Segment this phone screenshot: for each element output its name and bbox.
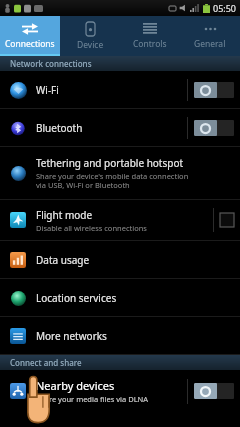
staticText: Device bbox=[77, 39, 104, 51]
staticText: Nearby devices bbox=[36, 378, 115, 393]
staticText: Connections bbox=[5, 38, 55, 50]
button[interactable]: Device bbox=[60, 16, 120, 56]
button[interactable]: Controls bbox=[120, 16, 180, 56]
staticText: General bbox=[194, 38, 226, 50]
staticText: Data usage bbox=[36, 253, 90, 267]
button[interactable]: Bluetooth bbox=[0, 109, 240, 146]
button[interactable]: Toggle switch bbox=[194, 82, 234, 98]
staticText: Tethering and portable hotspot bbox=[36, 156, 184, 170]
button[interactable]: Location services bbox=[0, 279, 240, 316]
button[interactable]: Toggle switch bbox=[194, 383, 234, 399]
button[interactable]: Toggle switch bbox=[194, 120, 234, 136]
staticText: Disable all wireless connections bbox=[36, 223, 147, 233]
staticText: 05:50 bbox=[213, 2, 237, 14]
staticText: Flight mode bbox=[36, 208, 93, 222]
button[interactable]: Flight mode bbox=[0, 200, 240, 240]
button[interactable]: General bbox=[180, 16, 240, 56]
button[interactable]: Nearby devices bbox=[0, 370, 240, 412]
staticText: Bluetooth bbox=[36, 121, 83, 135]
button[interactable]: Data usage bbox=[0, 241, 240, 278]
button[interactable]: More networks bbox=[0, 317, 240, 354]
staticText: Network connections bbox=[10, 58, 92, 69]
button[interactable]: Wi-Fi bbox=[0, 71, 240, 108]
button[interactable]: Connections bbox=[0, 16, 60, 56]
staticText: Share your device's mobile data connecti… bbox=[36, 171, 189, 190]
button[interactable]: Flight mode checkbox bbox=[220, 213, 234, 227]
staticText: Connect and share bbox=[10, 357, 82, 368]
staticText: More networks bbox=[36, 329, 107, 343]
button[interactable]: Tethering and portable hotspot bbox=[0, 147, 240, 199]
staticText: Location services bbox=[36, 291, 117, 305]
staticText: Share your media files via DLNA bbox=[36, 394, 149, 404]
staticText: Controls bbox=[133, 38, 167, 50]
staticText: Wi-Fi bbox=[36, 83, 59, 97]
